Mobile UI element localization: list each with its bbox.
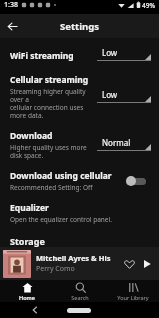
- button[interactable]: Mitchell Ayres & His Orchestra]: [0, 247, 159, 280]
- staticText: Higher quality uses more disk space.: [10, 143, 93, 160]
- button[interactable]: Download: [0, 125, 159, 165]
- staticText: 49%: [142, 1, 155, 10]
- staticText: 1:38: [4, 0, 18, 10]
- staticText: Your Library: [117, 294, 149, 301]
- button[interactable]: Equalizer: [0, 197, 159, 229]
- button[interactable]: Like: [120, 255, 138, 273]
- staticText: Storage: [10, 235, 45, 247]
- staticText: Recommended Setting: Off: [10, 183, 93, 192]
- staticText: Open the equalizer control panel.: [10, 215, 112, 224]
- staticText: Normal: [102, 137, 131, 148]
- button[interactable]: Back: [30, 305, 40, 315]
- staticText: Low: [102, 89, 118, 100]
- staticText: Streaming higher quality over a cellular…: [10, 87, 93, 120]
- button[interactable]: Home: [67, 308, 91, 313]
- staticText: Search: [71, 294, 89, 301]
- button[interactable]: Back: [0, 14, 24, 38]
- button[interactable]: Normal: [97, 137, 151, 154]
- button[interactable]: Low: [97, 89, 151, 106]
- button[interactable]: Search: [55, 281, 105, 302]
- staticText: Download: [10, 130, 53, 142]
- staticText: WiFi streaming: [10, 50, 74, 62]
- button[interactable]: Low: [97, 47, 151, 64]
- button[interactable]: Play: [138, 255, 156, 273]
- staticText: Perry Como: [36, 264, 75, 274]
- staticText: Cellular streaming: [10, 74, 89, 86]
- staticText: Download using cellular: [10, 170, 112, 182]
- button[interactable]: WiFi streaming: [0, 42, 159, 69]
- button[interactable]: Cellular streaming: [0, 69, 159, 125]
- staticText: Low: [102, 47, 118, 58]
- button[interactable]: Your Library: [108, 281, 158, 302]
- button[interactable]: Download using cellular toggle: [121, 172, 151, 190]
- staticText: Home: [19, 294, 35, 301]
- staticText: Settings: [60, 20, 99, 33]
- staticText: Mitchell Ayres & His Orchestra]: [36, 253, 118, 263]
- button[interactable]: Home: [2, 281, 52, 302]
- staticText: Equalizer: [10, 202, 49, 214]
- button[interactable]: Download using cellular: [0, 165, 159, 197]
